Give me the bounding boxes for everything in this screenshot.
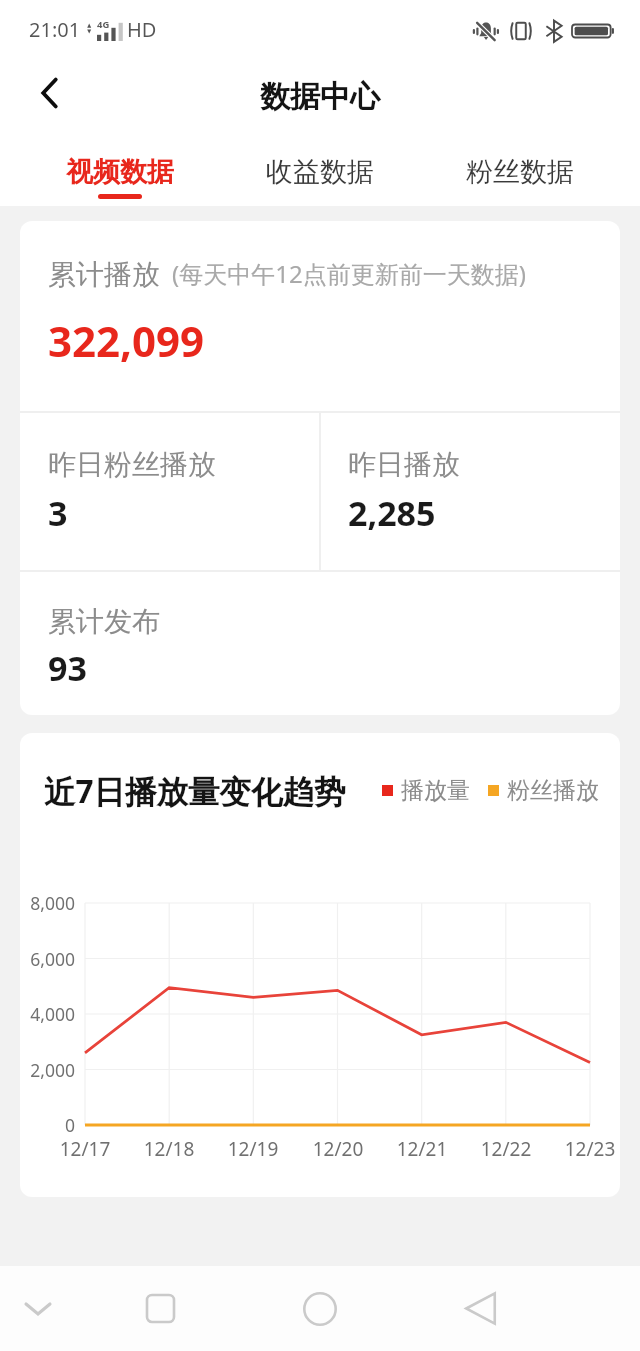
staticText: 12/17 (40, 1136, 130, 1162)
staticText: 0 (20, 1113, 75, 1137)
staticText: 昨日粉丝播放 (48, 447, 216, 482)
staticText: 4,000 (20, 1002, 75, 1026)
staticText: 视频数据 (66, 155, 174, 189)
button[interactable]: 粉丝数据 (420, 137, 620, 206)
staticText: 12/21 (377, 1136, 467, 1162)
staticText: 粉丝播放 (507, 776, 599, 805)
button[interactable]: Hide keyboard (8, 1279, 68, 1339)
staticText: 12/23 (545, 1136, 620, 1162)
staticText: 播放量 (401, 776, 470, 805)
staticText: 数据中心 (260, 78, 380, 116)
staticText: 4G (97, 18, 110, 31)
staticText: (每天中午12点前更新前一天数据) (172, 257, 526, 290)
staticText: 近7日播放量变化趋势 (44, 769, 346, 812)
staticText: 2,285 (348, 490, 436, 536)
staticText: 12/20 (293, 1136, 383, 1162)
staticText: 2,000 (20, 1058, 75, 1082)
button[interactable]: 收益数据 (220, 137, 420, 206)
button[interactable]: Back (25, 67, 77, 119)
button[interactable]: Home (240, 1266, 400, 1351)
staticText: 粉丝数据 (466, 155, 574, 189)
staticText: 21:01 (29, 16, 81, 43)
staticText: 昨日播放 (348, 447, 460, 482)
staticText: 收益数据 (266, 155, 374, 189)
staticText: HD (127, 16, 157, 43)
staticText: 12/22 (461, 1136, 551, 1162)
staticText: 累计发布 (48, 604, 160, 639)
staticText: 8,000 (20, 891, 75, 915)
staticText: 累计播放 (48, 257, 160, 292)
staticText: 3 (48, 490, 68, 536)
button[interactable]: Recent apps (80, 1266, 240, 1351)
button[interactable]: 视频数据 (20, 137, 220, 206)
staticText: 6,000 (20, 947, 75, 971)
button[interactable]: Back (400, 1266, 560, 1351)
staticText: 93 (48, 645, 87, 691)
staticText: 322,099 (48, 312, 205, 369)
staticText: 12/18 (124, 1136, 214, 1162)
staticText: 12/19 (208, 1136, 298, 1162)
